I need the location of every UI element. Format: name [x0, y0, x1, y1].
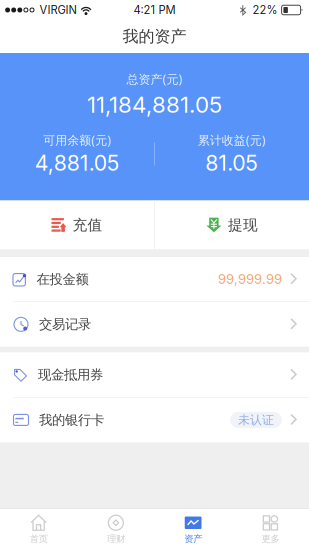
- staticText: 资产: [184, 533, 202, 545]
- staticText: 4:21 PM: [133, 3, 175, 17]
- staticText: 首页: [30, 533, 48, 545]
- staticText: 4,881.05: [35, 150, 120, 176]
- staticText: VIRGIN: [39, 3, 76, 17]
- staticText: 我的资产: [122, 27, 186, 46]
- button[interactable]: 理财: [77, 509, 154, 550]
- staticText: 提现: [228, 216, 258, 234]
- button[interactable]: 提现: [155, 200, 309, 249]
- staticText: 99,999.99: [218, 271, 282, 287]
- button[interactable]: 我的银行卡: [0, 398, 309, 442]
- staticText: 未认证: [238, 413, 274, 427]
- staticText: 81.05: [205, 150, 258, 176]
- button[interactable]: 充值: [0, 200, 154, 249]
- staticText: 可用余额(元): [43, 132, 111, 148]
- staticText: 交易记录: [39, 316, 91, 333]
- staticText: 我的银行卡: [39, 412, 104, 428]
- button[interactable]: 资产: [154, 509, 232, 550]
- button[interactable]: 交易记录: [0, 302, 309, 347]
- staticText: 22%: [253, 3, 278, 17]
- staticText: 11,184,881.05: [87, 91, 222, 118]
- button[interactable]: 现金抵用券: [0, 353, 309, 397]
- staticText: 理财: [107, 533, 125, 545]
- staticText: 总资产(元): [126, 71, 182, 87]
- button[interactable]: 首页: [0, 509, 77, 550]
- staticText: 充值: [72, 216, 102, 234]
- button[interactable]: 在投金额: [0, 257, 309, 301]
- staticText: 在投金额: [36, 271, 88, 287]
- staticText: 更多: [261, 533, 279, 545]
- button[interactable]: 更多: [232, 509, 309, 550]
- staticText: 累计收益(元): [198, 132, 266, 148]
- staticText: 现金抵用券: [38, 367, 103, 383]
